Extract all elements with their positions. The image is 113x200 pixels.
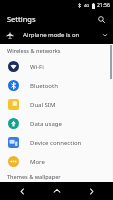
button[interactable]: Device connection [0, 133, 113, 152]
button[interactable]: Recent apps [78, 182, 104, 200]
button[interactable]: Dual SIM [0, 95, 113, 114]
button[interactable]: Bluetooth [0, 76, 113, 95]
staticText: 4G [84, 3, 90, 8]
button[interactable]: Search settings [95, 13, 107, 25]
staticText: Airplane mode is on [23, 31, 102, 39]
staticText: Device connection [30, 139, 82, 147]
button[interactable]: More [0, 152, 113, 171]
button[interactable]: Home [44, 182, 70, 200]
staticText: More [30, 158, 45, 166]
staticText: Wi-Fi [30, 63, 44, 71]
staticText: Wireless & networks [7, 47, 61, 54]
button[interactable]: Airplane mode is on [0, 26, 113, 44]
staticText: Dual SIM [30, 101, 56, 109]
staticText: Data usage [30, 120, 62, 128]
button[interactable]: Data usage [0, 114, 113, 133]
button[interactable]: Wi-Fi [0, 57, 113, 76]
staticText: Bluetooth [30, 82, 58, 90]
staticText: Settings [7, 14, 95, 24]
button[interactable]: Back [9, 182, 35, 200]
staticText: Themes & wallpaper [7, 173, 61, 180]
staticText: 21:56 [97, 2, 110, 9]
